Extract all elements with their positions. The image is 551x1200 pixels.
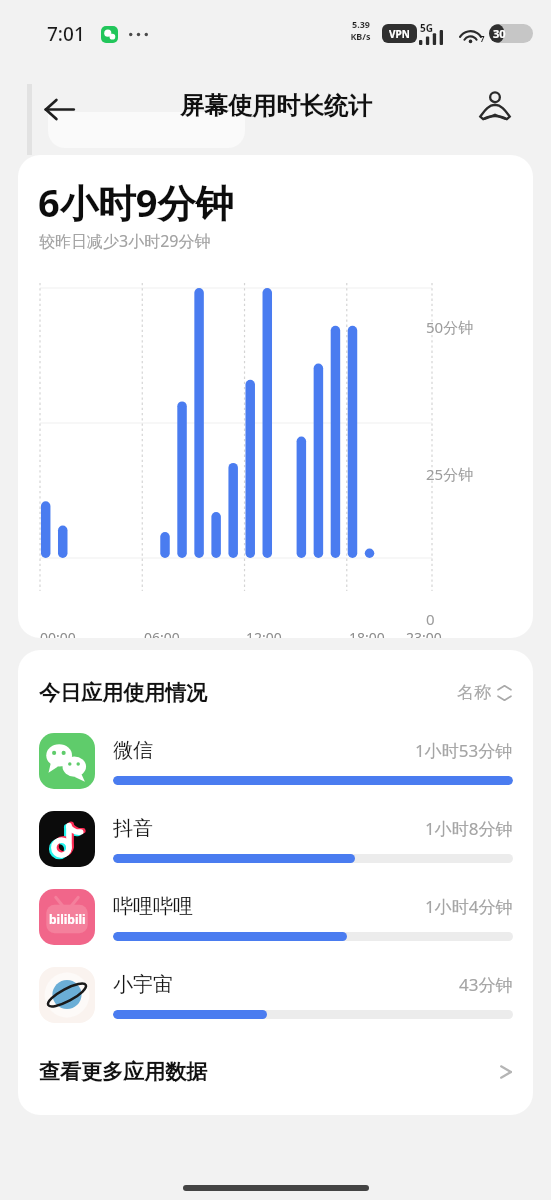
staticText: bilibili	[49, 911, 86, 927]
staticText: 50分钟	[426, 317, 474, 337]
staticText: 18:00	[349, 628, 385, 638]
staticText: 0	[426, 609, 435, 629]
staticText: 名称	[457, 682, 491, 703]
staticText: KB/s	[350, 30, 371, 42]
button[interactable]: 抖音	[18, 801, 533, 879]
staticText: 小宇宙	[113, 972, 173, 997]
staticText: VPN	[389, 27, 410, 41]
staticText: 今日应用使用情况	[39, 680, 207, 706]
staticText: 25分钟	[426, 464, 474, 484]
staticText: 较昨日减少3小时29分钟	[39, 230, 211, 252]
staticText: 23:00	[406, 628, 442, 638]
staticText: 00:00	[40, 628, 76, 638]
button[interactable]: Back	[30, 80, 88, 138]
staticText: 06:00	[144, 628, 180, 638]
staticText: 6小时9分钟	[38, 176, 234, 228]
staticText: 查看更多应用数据	[39, 1059, 207, 1085]
staticText: 1小时53分钟	[415, 739, 513, 762]
staticText: 5G	[420, 21, 433, 35]
button[interactable]: Focus mode	[466, 79, 524, 137]
button[interactable]: 名称	[453, 678, 515, 707]
button[interactable]: 微信	[18, 723, 533, 801]
staticText: 屏幕使用时长统计	[180, 91, 372, 121]
staticText: 1小时8分钟	[425, 817, 513, 840]
button[interactable]: 查看更多应用数据	[18, 1053, 533, 1115]
staticText: 7:01	[47, 21, 85, 47]
staticText: 抖音	[113, 816, 153, 841]
button[interactable]: bilibili	[18, 879, 533, 957]
staticText: 哔哩哔哩	[113, 894, 193, 919]
staticText: 1小时4分钟	[425, 895, 513, 918]
staticText: 30	[493, 26, 506, 41]
staticText: 43分钟	[459, 973, 513, 996]
staticText: 微信	[113, 738, 153, 763]
staticText: 7	[480, 33, 485, 44]
staticText: 5.39	[352, 18, 370, 30]
staticText: 12:00	[246, 628, 282, 638]
button[interactable]: 小宇宙	[18, 957, 533, 1035]
